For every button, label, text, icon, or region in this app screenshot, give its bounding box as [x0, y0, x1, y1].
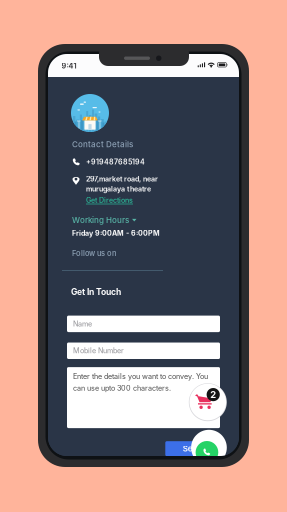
- button[interactable]: Name: [67, 316, 220, 332]
- staticText: 297,market road, near: [86, 175, 158, 183]
- staticText: Name: [73, 319, 92, 328]
- staticText: 9:41: [61, 61, 76, 70]
- staticText: can use upto 300 characters.: [73, 384, 171, 392]
- staticText: Enter the details you want to convey. Yo…: [73, 372, 208, 381]
- staticText: Working Hours: [72, 215, 129, 225]
- staticText: Get Directions: [86, 196, 133, 204]
- staticText: Contact Details: [72, 140, 133, 149]
- button[interactable]: Mobile Number: [67, 342, 220, 359]
- staticText: 2: [210, 389, 216, 400]
- staticText: Friday 9:00AM - 6:00PM: [72, 229, 160, 237]
- button[interactable]: Working Hours: [72, 215, 136, 225]
- staticText: murugalaya theatre: [86, 185, 151, 193]
- staticText: Send: [183, 444, 203, 454]
- button[interactable]: +919487685194: [72, 157, 139, 167]
- button[interactable]: Send: [165, 441, 220, 456]
- button[interactable]: Get Directions: [86, 196, 133, 204]
- button[interactable]: Enter the details you want to convey. Yo…: [67, 367, 220, 428]
- staticText: +919487685194: [86, 158, 145, 166]
- staticText: Mobile Number: [73, 346, 124, 355]
- button[interactable]: Chat on WhatsApp: [191, 430, 227, 465]
- staticText: Get In Touch: [71, 287, 121, 297]
- button[interactable]: Shopping cart, 2 items: [189, 383, 227, 421]
- staticText: Follow us on: [72, 249, 116, 258]
